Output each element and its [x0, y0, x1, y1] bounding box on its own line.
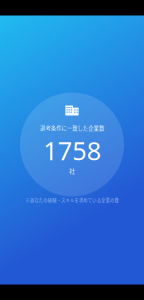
staticText: 社 [69, 166, 75, 175]
staticText: ※あなたの経験・スキルを求めている企業の数 [25, 197, 118, 203]
staticText: 選考条件に一致した企業数 [40, 124, 104, 132]
button[interactable]: 選考条件に一致した企業数 [20, 92, 124, 196]
staticText: 1758 [43, 133, 101, 168]
